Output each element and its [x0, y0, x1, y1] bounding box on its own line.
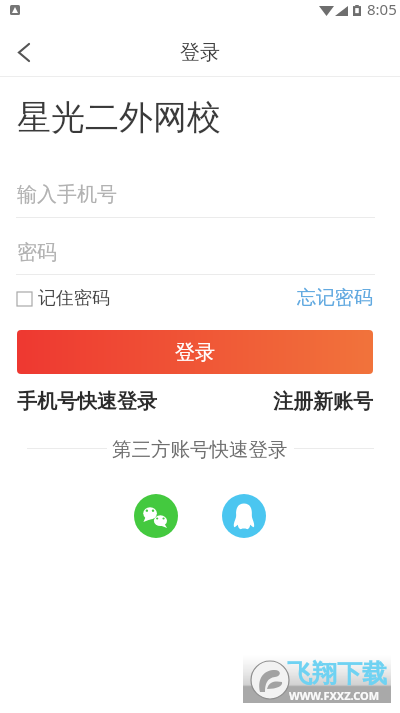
button[interactable]: QQ login [222, 494, 266, 538]
button[interactable]: 记住密码 [17, 287, 110, 310]
button[interactable]: 手机号快速登录 [17, 389, 157, 414]
staticText: 记住密码 [38, 287, 110, 310]
staticText: 飞翔下载 [287, 658, 387, 689]
button[interactable]: WeChat login [134, 494, 178, 538]
staticText: WWW.FXXZ.COM [289, 688, 380, 703]
staticText: 8:05 [367, 0, 397, 19]
button[interactable]: 忘记密码 [297, 286, 373, 310]
button[interactable]: Back [0, 29, 46, 75]
staticText: 登录 [175, 340, 215, 365]
button[interactable]: 注册新账号 [273, 389, 373, 414]
staticText: 登录 [180, 40, 220, 65]
staticText: 星光二外网校 [17, 96, 221, 139]
button[interactable]: 登录 [17, 330, 373, 374]
staticText: 第三方账号快速登录 [112, 437, 288, 459]
staticText: 输入手机号 [17, 182, 117, 207]
staticText: 密码 [17, 240, 57, 265]
